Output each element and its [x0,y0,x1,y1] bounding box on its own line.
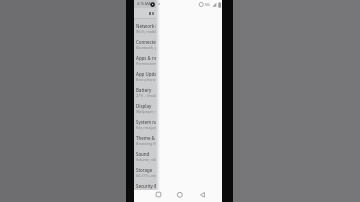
button[interactable]: Sound [134,149,156,165]
button[interactable]: Connected devices [134,37,156,53]
button[interactable]: App Updates [134,69,156,85]
staticText: 4:16 AM [137,1,151,6]
staticText: Wi-Fi, mobile, data usage [136,29,156,34]
button[interactable]: Theme & wallpaper [134,133,156,149]
staticText: Permissions, default apps [136,61,156,66]
staticText: Battery [136,87,152,93]
button[interactable]: Security & lock [134,181,156,190]
staticText: Key navigation, gestures [136,125,156,130]
staticText: Theme & wallpaper [136,135,156,141]
button[interactable]: Network & Internet [134,21,156,37]
staticText: Best phone experience [136,77,156,82]
button[interactable]: System navigation [134,117,156,133]
button[interactable]: Battery [134,85,156,101]
staticText: 5G [205,2,210,7]
staticText: Bluetooth, pairing [136,45,156,50]
button[interactable] [150,189,166,202]
staticText: 64.37% used - 11.4 GB [136,173,156,178]
staticText: Volume, vibration, Do [136,157,156,162]
staticText: Storage [136,167,153,173]
button[interactable]: Storage [134,165,156,181]
staticText: Security & lock [136,183,156,189]
staticText: 27% - Should last until [136,93,156,98]
staticText: Sound [136,151,150,157]
staticText: App Updates [136,71,156,77]
staticText: Apps & notifications [136,55,156,61]
staticText: Network & Internet [136,23,156,29]
button[interactable]: Display [134,101,156,117]
staticText: System navigation [136,119,156,125]
staticText: Connected devices [136,39,156,45]
button[interactable] [194,189,210,202]
button[interactable]: Apps & notifications [134,53,156,69]
staticText: Wallpaper, sleep, font [136,109,156,114]
staticText: Display [136,103,152,109]
button[interactable] [172,189,188,202]
staticText: Browsing themes, icons [136,141,156,146]
